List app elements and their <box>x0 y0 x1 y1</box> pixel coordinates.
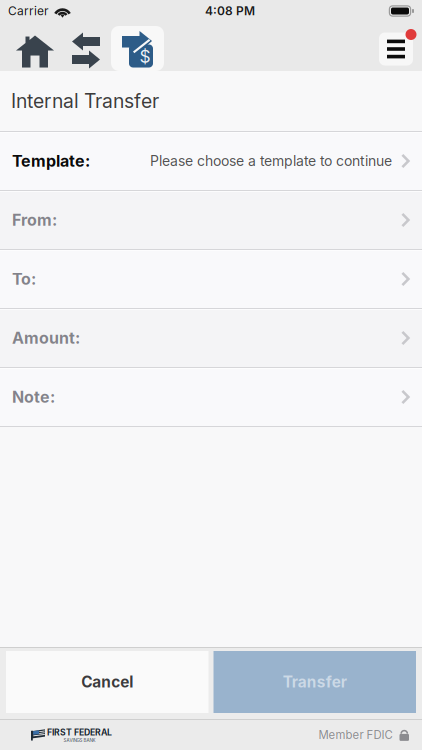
button[interactable]: Amount: <box>0 309 422 367</box>
staticText: Carrier <box>8 4 49 18</box>
button[interactable]: From: <box>0 191 422 249</box>
staticText: FIRST FEDERAL <box>47 727 112 737</box>
button[interactable]: Note: <box>0 368 422 426</box>
staticText: Template: <box>12 151 90 171</box>
staticText: To: <box>12 269 36 289</box>
staticText: SAVINGS BANK <box>63 737 95 743</box>
staticText: Note: <box>12 387 55 407</box>
button[interactable]: Cancel <box>6 651 208 713</box>
staticText: Please choose a template to continue <box>150 152 392 169</box>
staticText: $ <box>139 46 150 67</box>
staticText: 4:08 PM <box>205 4 255 18</box>
button[interactable]: Template: <box>0 132 422 190</box>
button[interactable]: Transfer <box>213 651 416 713</box>
staticText: Internal Transfer <box>11 89 159 113</box>
staticText: Member FDIC <box>318 728 392 742</box>
button[interactable]: To: <box>0 250 422 308</box>
button[interactable]: Internal Transfer <box>111 22 164 71</box>
staticText: Transfer <box>283 673 347 691</box>
staticText: Amount: <box>12 328 80 348</box>
button[interactable]: Home <box>9 22 61 71</box>
button[interactable]: Menu <box>370 22 422 71</box>
staticText: From: <box>12 210 57 230</box>
staticText: Cancel <box>81 673 133 691</box>
button[interactable]: Transfers <box>61 22 111 71</box>
